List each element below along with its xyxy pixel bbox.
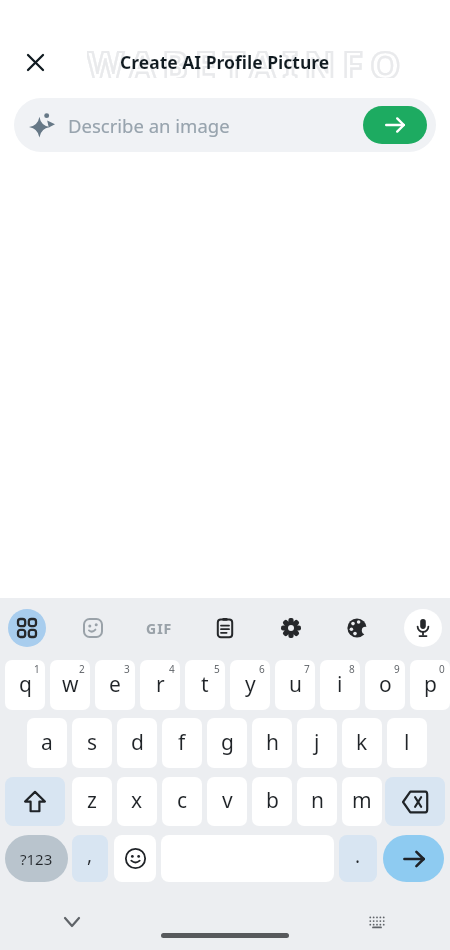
button[interactable]: [383, 835, 444, 882]
button[interactable]: [17, 44, 53, 80]
staticText: ,: [87, 842, 93, 868]
button[interactable]: d: [117, 718, 157, 768]
staticText: h: [266, 728, 279, 757]
button[interactable]: g: [207, 718, 247, 768]
staticText: q: [19, 670, 32, 699]
button[interactable]: z: [72, 777, 112, 826]
button[interactable]: [54, 904, 90, 940]
button[interactable]: [363, 106, 427, 144]
staticText: e: [109, 670, 121, 699]
staticText: u: [289, 670, 302, 699]
button[interactable]: f: [162, 718, 202, 768]
button[interactable]: [5, 777, 65, 826]
staticText: c: [177, 786, 188, 815]
staticText: x: [131, 786, 143, 815]
button[interactable]: e: [95, 660, 135, 710]
staticText: k: [356, 728, 368, 757]
button[interactable]: [206, 609, 244, 647]
button[interactable]: c: [162, 777, 202, 826]
staticText: 4: [169, 662, 175, 676]
staticText: n: [311, 786, 324, 815]
staticText: b: [266, 786, 279, 815]
button[interactable]: ,: [72, 835, 108, 882]
button[interactable]: a: [27, 718, 67, 768]
staticText: z: [87, 786, 97, 815]
button[interactable]: x: [117, 777, 157, 826]
staticText: v: [222, 786, 233, 815]
staticText: 8: [349, 662, 355, 676]
button[interactable]: l: [387, 718, 427, 768]
staticText: w: [62, 670, 79, 699]
button[interactable]: [8, 609, 46, 647]
staticText: i: [337, 670, 343, 699]
button[interactable]: n: [297, 777, 337, 826]
staticText: 9: [394, 662, 400, 676]
button[interactable]: k: [342, 718, 382, 768]
staticText: 2: [79, 662, 85, 676]
staticText: t: [201, 670, 209, 699]
button[interactable]: m: [342, 777, 382, 826]
staticText: 3: [124, 662, 130, 676]
staticText: p: [424, 670, 437, 699]
staticText: Describe an image: [68, 113, 363, 138]
staticText: r: [156, 670, 165, 699]
staticText: ?123: [20, 849, 53, 869]
staticText: 5: [214, 662, 220, 676]
button[interactable]: q: [5, 660, 45, 710]
staticText: 1: [34, 662, 40, 676]
button[interactable]: [272, 609, 310, 647]
button[interactable]: [385, 777, 445, 826]
button[interactable]: h: [252, 718, 292, 768]
button[interactable]: [338, 609, 376, 647]
button[interactable]: .: [339, 835, 377, 882]
button[interactable]: [404, 609, 442, 647]
staticText: Create AI Profile Picture: [120, 50, 330, 74]
staticText: GIF: [146, 619, 173, 638]
button[interactable]: t: [185, 660, 225, 710]
button[interactable]: [74, 609, 112, 647]
button[interactable]: b: [252, 777, 292, 826]
button[interactable]: w: [50, 660, 90, 710]
button[interactable]: GIF: [140, 609, 178, 647]
staticText: 7: [304, 662, 310, 676]
staticText: y: [245, 670, 256, 699]
staticText: f: [178, 728, 186, 757]
button[interactable]: p: [410, 660, 450, 710]
staticText: s: [87, 728, 98, 757]
button[interactable]: s: [72, 718, 112, 768]
button[interactable]: y: [230, 660, 270, 710]
button[interactable]: v: [207, 777, 247, 826]
staticText: 0: [439, 662, 445, 676]
staticText: g: [221, 728, 234, 757]
staticText: l: [404, 728, 410, 757]
staticText: m: [352, 786, 372, 815]
staticText: 6: [259, 662, 265, 676]
button[interactable]: Describe an image: [14, 98, 436, 152]
staticText: WABETAINFO: [87, 38, 408, 78]
button[interactable]: [359, 904, 395, 940]
staticText: .: [355, 843, 361, 869]
button[interactable]: r: [140, 660, 180, 710]
staticText: a: [41, 728, 53, 757]
staticText: d: [131, 728, 144, 757]
staticText: j: [314, 728, 320, 757]
button[interactable]: [114, 835, 156, 882]
staticText: o: [379, 670, 392, 699]
button[interactable]: u: [275, 660, 315, 710]
button[interactable]: ?123: [5, 835, 68, 882]
button[interactable]: j: [297, 718, 337, 768]
button[interactable]: i: [320, 660, 360, 710]
button[interactable]: o: [365, 660, 405, 710]
